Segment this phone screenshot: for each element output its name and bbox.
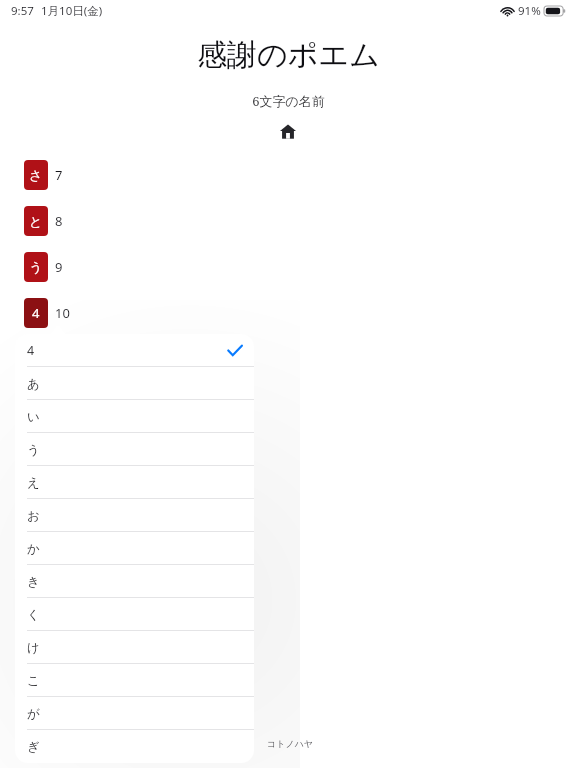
button[interactable]: か xyxy=(15,532,254,565)
staticText: こ xyxy=(27,673,40,689)
button[interactable]: え xyxy=(15,466,254,499)
staticText: う xyxy=(29,259,43,275)
button[interactable]: き xyxy=(15,565,254,598)
button[interactable]: こ xyxy=(15,664,254,697)
button[interactable]: ぎ xyxy=(15,730,254,763)
button[interactable]: 4 xyxy=(15,334,254,367)
button[interactable]: と xyxy=(24,206,48,236)
staticText: 9:57 xyxy=(11,3,34,19)
staticText: 6文字の名前 xyxy=(252,92,325,110)
button[interactable]: お xyxy=(15,499,254,532)
staticText: き xyxy=(27,574,40,590)
button[interactable]: 4 xyxy=(24,298,48,328)
staticText: が xyxy=(27,706,40,722)
staticText: あ xyxy=(27,376,40,392)
staticText: 9 xyxy=(55,258,63,276)
staticText: け xyxy=(27,640,40,656)
staticText: コトノハヤ xyxy=(267,738,314,749)
button[interactable]: さ xyxy=(24,160,48,190)
staticText: 10 xyxy=(55,304,70,322)
staticText: う xyxy=(27,442,40,458)
button[interactable]: ホーム xyxy=(275,118,301,144)
button[interactable]: あ xyxy=(15,367,254,400)
staticText: く xyxy=(27,607,40,623)
staticText: と xyxy=(29,213,43,229)
staticText: 1月10日(金) xyxy=(41,3,103,19)
button[interactable]: い xyxy=(15,400,254,433)
button[interactable]: け xyxy=(15,631,254,664)
staticText: 8 xyxy=(55,212,63,230)
staticText: さ xyxy=(29,167,43,183)
staticText: か xyxy=(27,541,40,557)
staticText: え xyxy=(27,475,40,491)
staticText: お xyxy=(27,508,40,524)
button[interactable]: が xyxy=(15,697,254,730)
staticText: ぎ xyxy=(27,739,40,755)
staticText: 感謝のポエム xyxy=(197,36,380,74)
staticText: 4 xyxy=(32,304,40,322)
staticText: 91% xyxy=(518,3,541,19)
button[interactable]: う xyxy=(15,433,254,466)
staticText: 4 xyxy=(27,342,35,359)
staticText: い xyxy=(27,409,40,425)
staticText: 7 xyxy=(55,166,63,184)
button[interactable]: う xyxy=(24,252,48,282)
button[interactable]: く xyxy=(15,598,254,631)
